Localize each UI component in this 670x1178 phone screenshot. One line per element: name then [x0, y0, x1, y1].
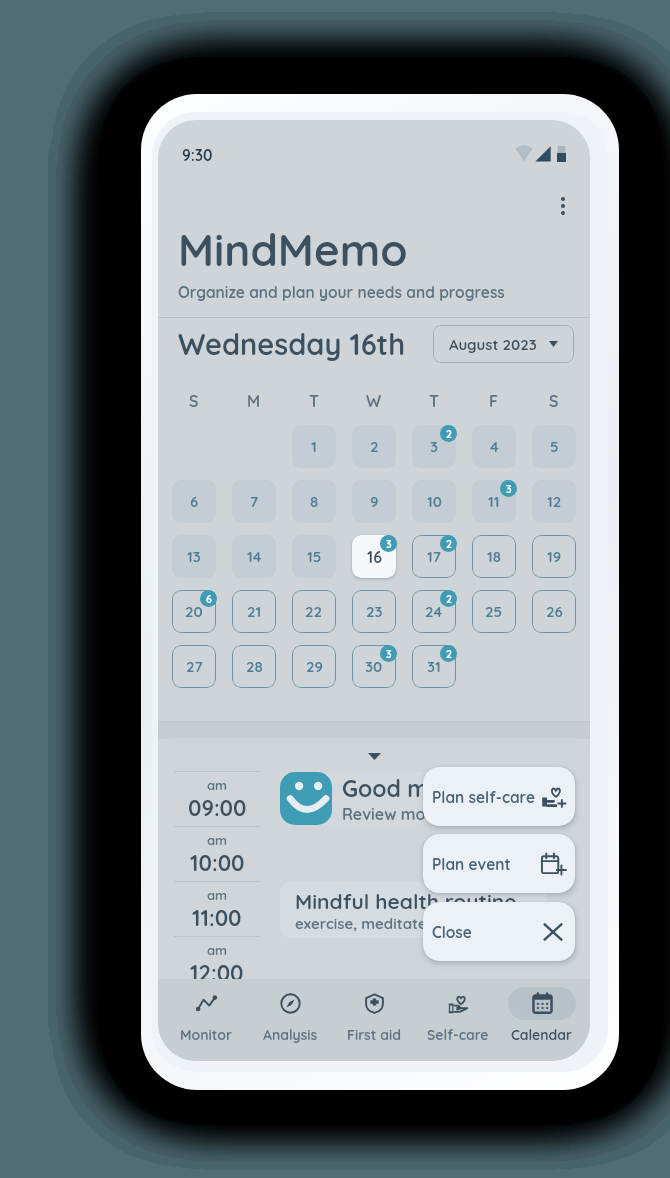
button[interactable]: 10 — [412, 480, 456, 523]
staticText: Close — [432, 922, 472, 941]
staticText: 10:00 — [190, 849, 245, 877]
staticText: Review mood — [342, 804, 446, 824]
staticText: 15 — [307, 547, 322, 566]
button[interactable]: 19 — [532, 535, 576, 578]
staticText: exercise, meditate, read — [295, 914, 469, 933]
staticText: 14 — [247, 547, 262, 566]
staticText: 1 — [311, 437, 317, 456]
button[interactable]: Good morning — [280, 772, 572, 825]
button[interactable]: More options — [545, 188, 581, 224]
staticText: First aid — [347, 1026, 401, 1044]
button[interactable]: 28 — [232, 645, 276, 688]
staticText: 2 — [370, 437, 379, 456]
staticText: MindMemo — [178, 222, 408, 277]
staticText: 8 — [310, 492, 319, 511]
staticText: 6 — [190, 492, 199, 511]
button[interactable]: 4 — [472, 425, 516, 468]
staticText: 10 — [427, 492, 442, 511]
staticText: 09:00 — [188, 794, 247, 822]
button[interactable]: 18 — [472, 535, 516, 578]
button[interactable]: 9 — [352, 480, 396, 523]
staticText: Calendar — [511, 1026, 573, 1044]
staticText: 11:00 — [192, 904, 242, 932]
button[interactable]: 14 — [232, 535, 276, 578]
staticText: S — [549, 391, 559, 411]
button[interactable]: 1 — [292, 425, 336, 468]
staticText: W — [366, 391, 382, 411]
staticText: 30 — [365, 657, 383, 676]
staticText: 12 — [547, 492, 562, 511]
button[interactable]: August 2023 — [433, 325, 574, 363]
staticText: 2 — [446, 647, 452, 660]
staticText: 5 — [550, 437, 559, 456]
button[interactable]: 30 — [352, 645, 396, 688]
button[interactable]: 3 — [412, 425, 456, 468]
button[interactable]: 6 — [172, 480, 216, 523]
button[interactable]: Analysis — [248, 978, 332, 1060]
staticText: 2 — [446, 592, 452, 605]
staticText: 2 — [446, 537, 452, 550]
button[interactable]: Mindful health routine — [280, 882, 547, 938]
button[interactable]: Self-care — [416, 978, 500, 1060]
button[interactable]: Monitor — [164, 978, 248, 1060]
staticText: 24 — [425, 602, 443, 621]
staticText: 19 — [547, 547, 562, 566]
staticText: F — [489, 391, 499, 411]
button[interactable]: 24 — [412, 590, 456, 633]
staticText: 3 — [506, 482, 512, 495]
staticText: am — [207, 777, 228, 793]
button[interactable]: 8 — [292, 480, 336, 523]
button[interactable]: 7 — [232, 480, 276, 523]
staticText: Good morning — [342, 774, 500, 803]
staticText: 3 — [430, 437, 439, 456]
button[interactable]: Calendar — [500, 978, 584, 1060]
staticText: 3 — [386, 537, 392, 550]
staticText: Mindful health routine — [295, 888, 517, 914]
staticText: 27 — [186, 657, 203, 676]
button[interactable]: 13 — [172, 535, 216, 578]
staticText: 31 — [427, 657, 441, 676]
staticText: Plan self-care — [432, 787, 535, 806]
staticText: Analysis — [263, 1026, 318, 1044]
button[interactable]: First aid — [332, 978, 416, 1060]
button[interactable]: Collapse schedule — [358, 740, 390, 772]
button[interactable]: 16 — [352, 535, 396, 578]
staticText: 16 — [367, 547, 382, 567]
staticText: M — [247, 391, 261, 411]
button[interactable]: 17 — [412, 535, 456, 578]
button[interactable]: 31 — [412, 645, 456, 688]
staticText: 20 — [185, 602, 203, 621]
staticText: 7 — [250, 492, 259, 511]
button[interactable]: 22 — [292, 590, 336, 633]
button[interactable]: 29 — [292, 645, 336, 688]
button[interactable]: Plan event — [423, 834, 575, 893]
button[interactable]: 5 — [532, 425, 576, 468]
staticText: am — [207, 887, 228, 903]
button[interactable]: Close — [423, 902, 575, 961]
button[interactable]: 11 — [472, 480, 516, 523]
staticText: T — [309, 391, 319, 411]
staticText: 28 — [246, 657, 263, 676]
button[interactable]: 12 — [532, 480, 576, 523]
staticText: 23 — [366, 602, 383, 621]
button[interactable]: Plan self-care — [423, 767, 575, 826]
staticText: S — [189, 391, 199, 411]
button[interactable]: 23 — [352, 590, 396, 633]
button[interactable]: 27 — [172, 645, 216, 688]
button[interactable]: 15 — [292, 535, 336, 578]
staticText: August 2023 — [449, 335, 537, 354]
staticText: Organize and plan your needs and progres… — [178, 282, 505, 301]
button[interactable]: 20 — [172, 590, 216, 633]
staticText: Monitor — [180, 1026, 232, 1044]
staticText: 4 — [490, 437, 499, 456]
staticText: 3 — [386, 647, 392, 660]
button[interactable]: 26 — [532, 590, 576, 633]
staticText: 9 — [370, 492, 379, 511]
staticText: am — [207, 832, 228, 848]
button[interactable]: 2 — [352, 425, 396, 468]
staticText: 17 — [427, 547, 441, 566]
button[interactable]: 25 — [472, 590, 516, 633]
button[interactable]: 21 — [232, 590, 276, 633]
staticText: 26 — [546, 602, 563, 621]
staticText: Self-care — [427, 1026, 489, 1044]
